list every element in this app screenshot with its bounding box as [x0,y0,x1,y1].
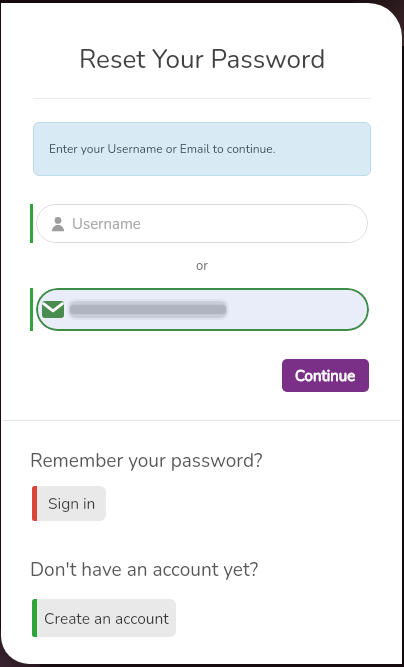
button[interactable]: Username [36,204,368,243]
staticText: Sign in [48,493,96,514]
staticText: Username [72,214,141,234]
staticText: Reset Your Password [79,42,326,77]
staticText: Remember your password? [30,448,263,474]
staticText: Continue [295,366,356,386]
button[interactable] [36,288,369,331]
button[interactable]: Create an account [32,599,176,637]
staticText: or [196,257,208,275]
staticText: Enter your Username or Email to continue… [49,141,276,157]
staticText: Don't have an account yet? [30,557,259,583]
button[interactable]: Sign in [32,486,106,521]
button[interactable]: Continue [282,359,369,392]
staticText: Create an account [44,608,169,629]
